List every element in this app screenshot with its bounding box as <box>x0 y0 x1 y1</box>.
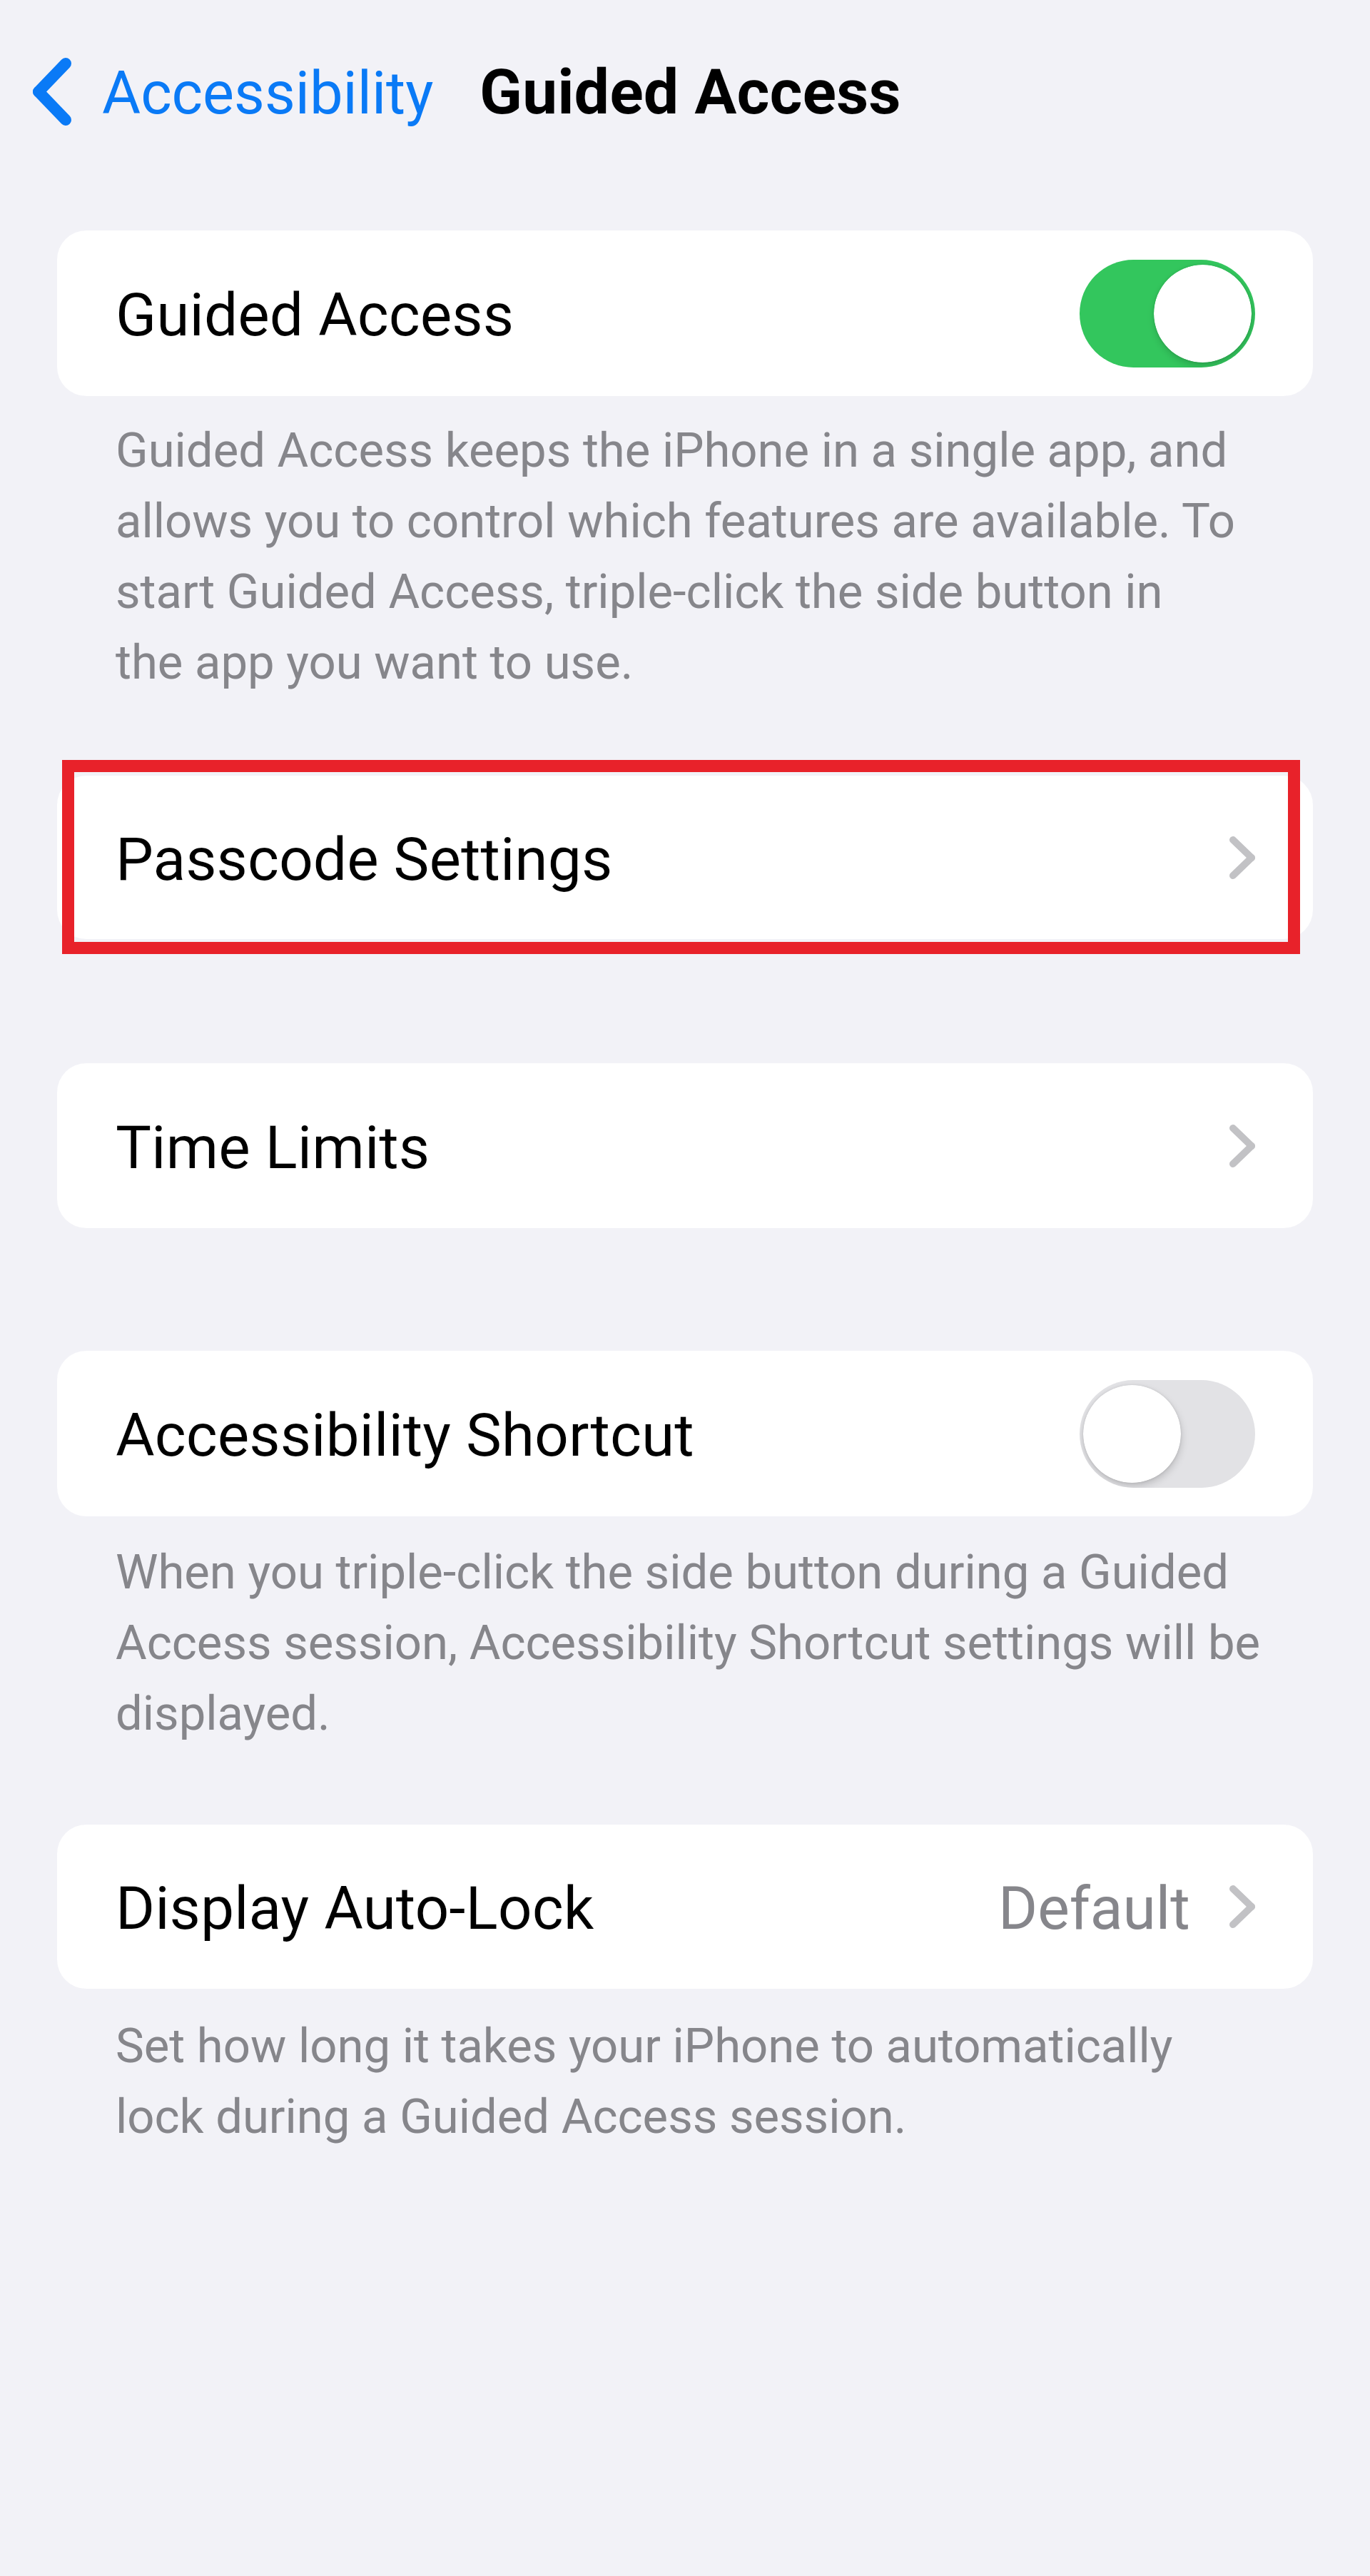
button[interactable]: Accessibility Shortcut <box>57 1351 1313 1516</box>
staticText: Guided Access <box>479 55 901 129</box>
button[interactable]: Time Limits <box>57 1063 1313 1228</box>
staticText: Time Limits <box>116 1112 430 1183</box>
staticText: Passcode Settings <box>116 823 613 895</box>
button[interactable]: Passcode Settings <box>57 776 1313 939</box>
button[interactable]: Back to Accessibility <box>16 34 448 148</box>
button[interactable]: Guided Access <box>57 230 1313 396</box>
staticText: When you triple-click the side button du… <box>116 1533 1264 1745</box>
staticText: Display Auto-Lock <box>116 1872 594 1944</box>
staticText: Set how long it takes your iPhone to aut… <box>116 2007 1264 2148</box>
staticText: Accessibility Shortcut <box>116 1399 694 1471</box>
staticText: Guided Access <box>116 279 514 350</box>
staticText: Guided Access keeps the iPhone in a sing… <box>116 411 1237 694</box>
button[interactable]: Display Auto-Lock <box>57 1825 1313 1989</box>
staticText: Accessibility <box>102 55 434 129</box>
button[interactable]: Toggle off <box>1080 1380 1255 1488</box>
staticText: Default <box>998 1872 1190 1944</box>
button[interactable]: Toggle on <box>1080 260 1255 367</box>
